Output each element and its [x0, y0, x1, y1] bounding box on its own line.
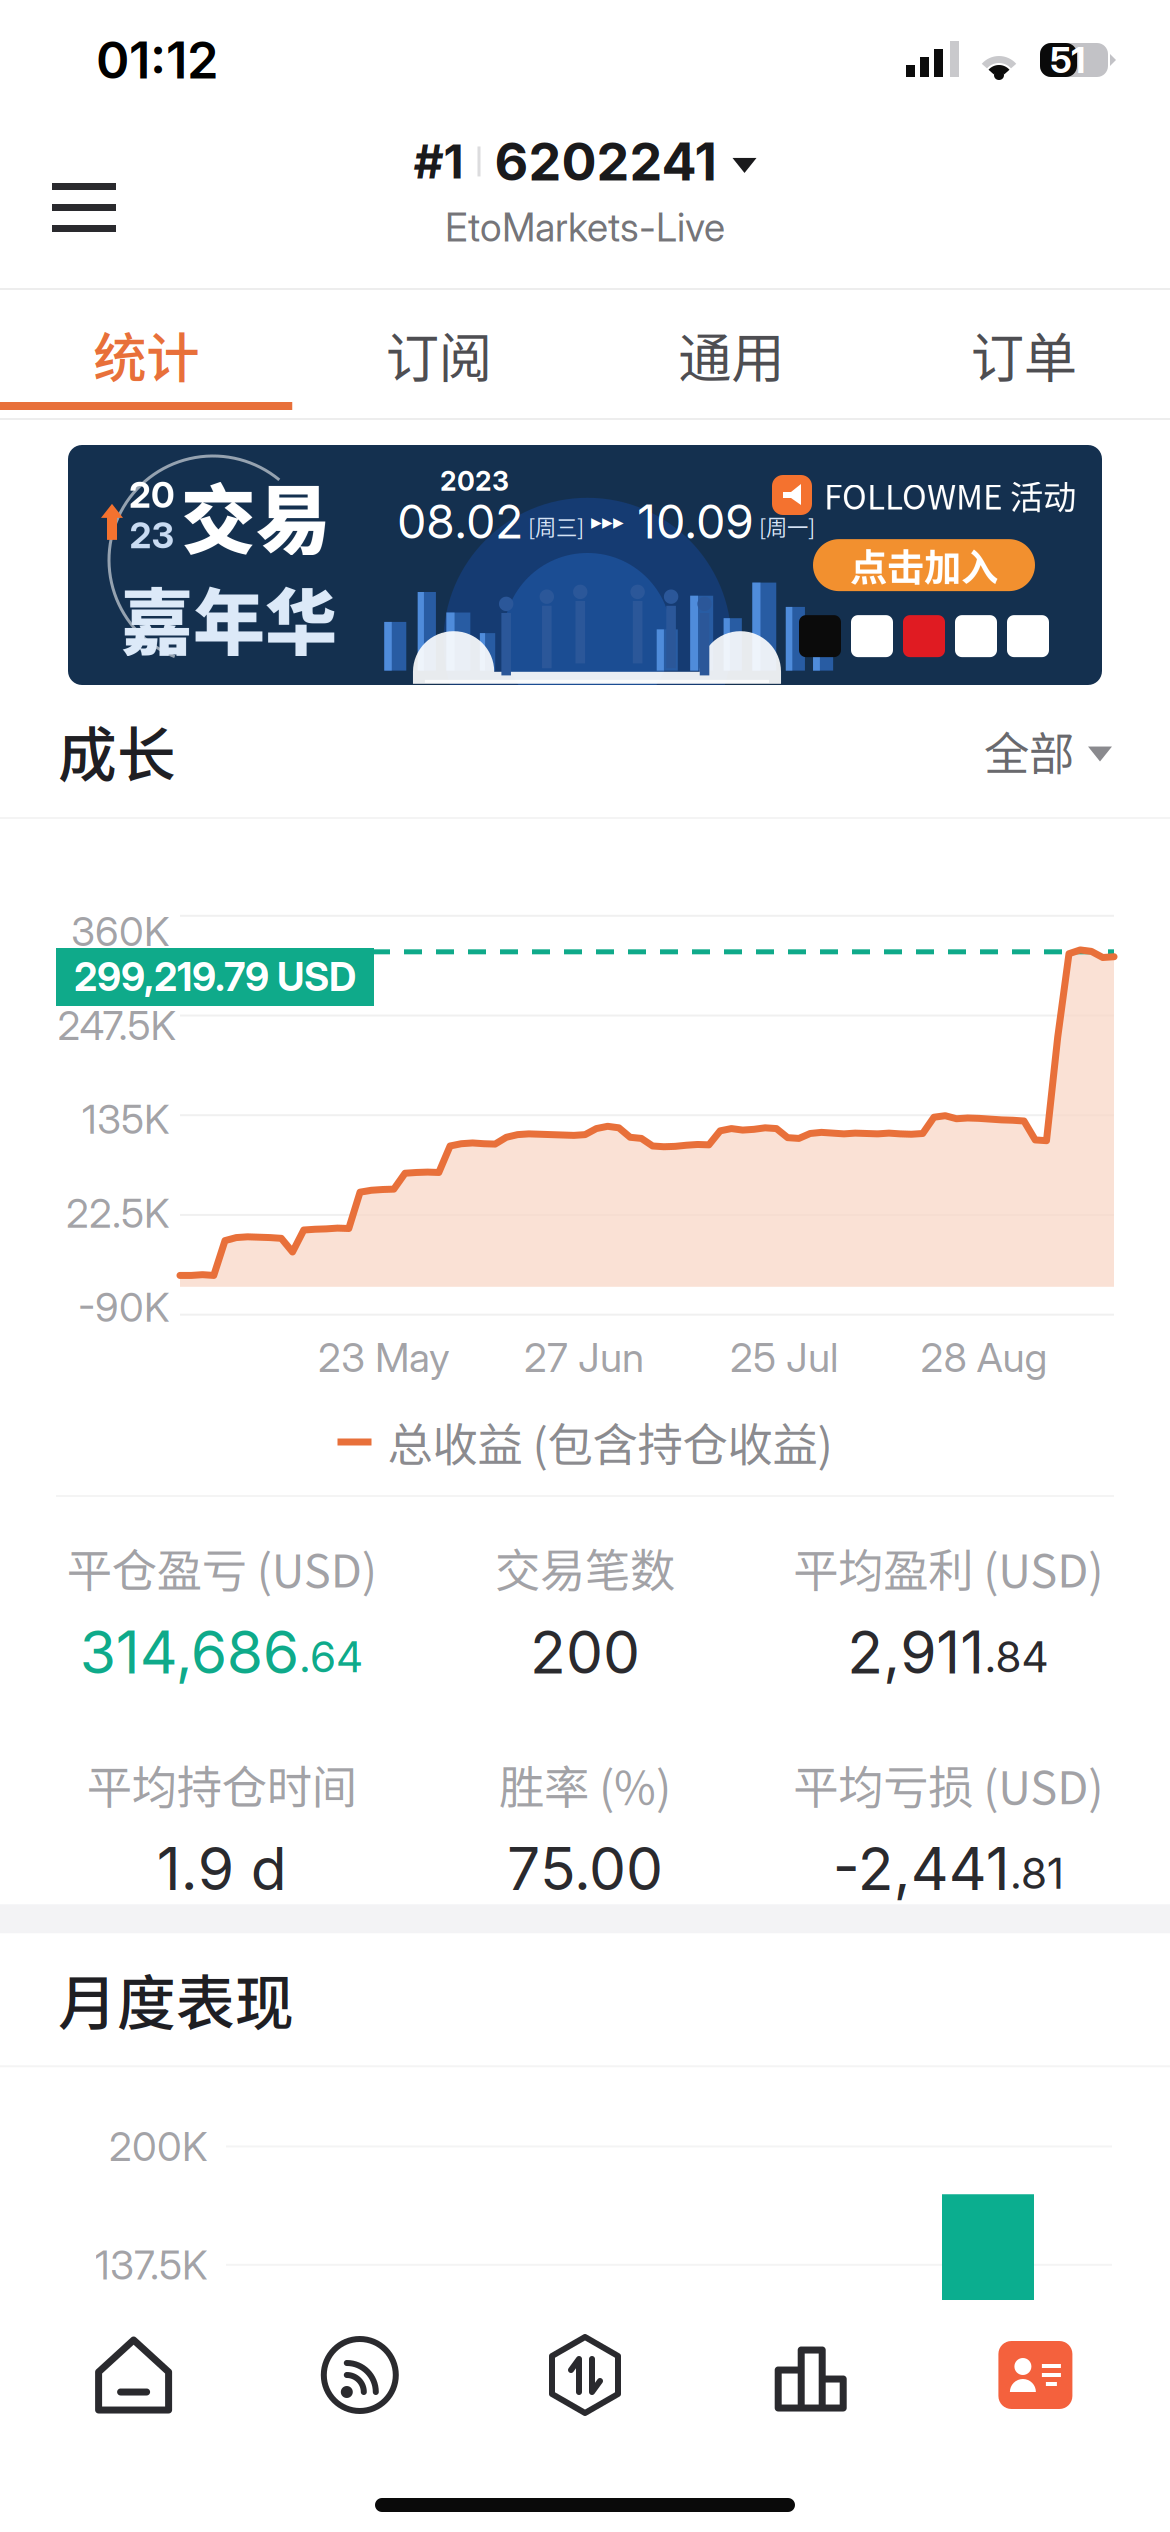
button[interactable]: Home	[22, 2300, 247, 2450]
staticText: 2,911	[847, 1617, 984, 1688]
staticText: 28 Aug	[920, 1333, 1047, 1382]
staticText: 1.9 d	[157, 1833, 287, 1904]
button[interactable]: 统计	[0, 290, 292, 418]
staticText: 23	[129, 513, 174, 557]
staticText: 299,219.79 USD	[74, 954, 356, 1000]
staticText: 统计	[93, 316, 199, 393]
button[interactable]: 20	[68, 445, 1102, 685]
staticText: 点击加入	[850, 538, 998, 592]
staticText: -90K	[78, 1283, 170, 1331]
staticText: -2,441	[833, 1833, 1010, 1904]
staticText: 314,686	[80, 1617, 299, 1688]
staticText: 胜率 (%)	[499, 1752, 671, 1817]
staticText: 360K	[71, 907, 170, 956]
staticText: 平均盈利 (USD)	[793, 1535, 1103, 1601]
staticText: 135K	[82, 1095, 170, 1143]
staticText: 全部	[984, 718, 1074, 784]
staticText: 75.00	[507, 1833, 663, 1904]
staticText: 25 Jul	[730, 1333, 838, 1382]
staticText: EtoMarkets-Live	[445, 204, 725, 251]
staticText: 22.5K	[66, 1189, 170, 1237]
staticText: 27 Jun	[524, 1333, 644, 1382]
staticText: [周三]	[523, 511, 584, 541]
staticText: [周一]	[754, 511, 815, 541]
staticText: FOLLOWME 活动	[824, 471, 1076, 519]
staticText: 200K	[109, 2122, 208, 2171]
staticText: 6202241	[494, 130, 716, 193]
staticText: 137.5K	[95, 2241, 208, 2289]
button[interactable]: 全部	[984, 700, 1112, 802]
staticText: 交易	[181, 461, 331, 569]
staticText: 23 May	[318, 1333, 450, 1382]
staticText: #1	[413, 133, 463, 190]
staticText: 01:12	[96, 29, 219, 91]
staticText: 成长	[58, 708, 176, 793]
staticText: 总收益 (包含持仓收益)	[387, 1409, 832, 1475]
staticText: 平仓盈亏 (USD)	[67, 1535, 377, 1601]
staticText: .64	[299, 1631, 364, 1682]
staticText: .84	[984, 1631, 1049, 1682]
button[interactable]: Profile	[923, 2300, 1148, 2450]
staticText: 月度表现	[58, 1957, 294, 2042]
staticText: 10.09	[624, 493, 754, 550]
staticText: 平均亏损 (USD)	[793, 1752, 1103, 1817]
staticText: .81	[1010, 1847, 1064, 1899]
button[interactable]: 通用	[585, 290, 877, 418]
button[interactable]: Menu	[22, 149, 146, 259]
staticText: 订阅	[386, 316, 492, 393]
staticText: 交易笔数	[495, 1535, 675, 1601]
button[interactable]: 订单	[877, 290, 1170, 418]
staticText: 08.02	[397, 493, 523, 550]
staticText: 200	[530, 1617, 640, 1688]
button[interactable]: Trade	[472, 2300, 698, 2450]
button[interactable]: Feed	[247, 2300, 472, 2450]
staticText: 平均持仓时间	[87, 1752, 357, 1817]
button[interactable]: 订阅	[292, 290, 585, 418]
staticText: 20	[129, 473, 175, 516]
staticText: 2023	[440, 465, 509, 497]
staticText: 51	[1050, 38, 1085, 82]
staticText: 嘉年华	[121, 565, 337, 669]
staticText: 通用	[678, 316, 784, 393]
staticText: 订单	[971, 316, 1077, 393]
staticText: ▸▸▸	[584, 509, 624, 534]
button[interactable]: Markets	[698, 2300, 923, 2450]
staticText: 247.5K	[57, 1001, 176, 1050]
